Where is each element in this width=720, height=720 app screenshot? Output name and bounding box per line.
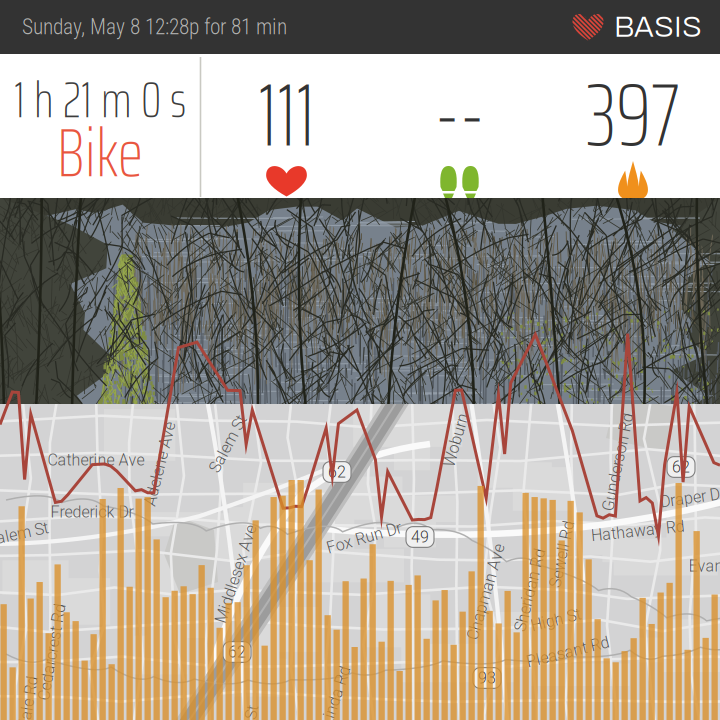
staticText: High St <box>530 611 581 629</box>
staticText: 62 <box>672 458 690 476</box>
staticText: Sheridan Rd <box>487 581 572 599</box>
staticText: -- <box>434 46 484 184</box>
staticText: Chapman Ave <box>436 583 535 601</box>
staticText: Linda Rd <box>305 687 367 705</box>
staticText: 62 <box>328 463 346 481</box>
staticText: Cedarcrest Rd <box>3 643 101 661</box>
staticText: Oakdale Rd <box>0 707 66 720</box>
staticText: Evan <box>688 557 720 575</box>
staticText: Sunday, May 8 12:28p for 81 min <box>22 14 287 39</box>
staticText: 93 <box>478 669 496 687</box>
staticText: BASIS <box>614 11 702 43</box>
staticText: Gunderson Rd <box>568 453 668 471</box>
staticText: Fox Run Dr <box>325 529 402 547</box>
staticText: Sewell Rd <box>528 545 596 563</box>
staticText: 1 h 21 m 0 s <box>14 61 186 139</box>
staticText: Salem St <box>0 525 49 543</box>
staticText: Catherine Ave <box>47 451 144 469</box>
staticText: Adelene Ave <box>117 455 203 473</box>
staticText: 62 <box>228 643 246 661</box>
staticText: Salem St <box>197 435 259 453</box>
staticText: Bike <box>57 100 143 205</box>
staticText: 49 <box>411 528 429 546</box>
staticText: Hathaway Rd <box>591 522 685 540</box>
staticText: Pleasant Rd <box>525 643 610 661</box>
staticText: 397 <box>586 46 680 184</box>
staticText: 111 <box>258 46 315 184</box>
staticText: Woburn <box>428 431 483 449</box>
button[interactable]: BASIS <box>572 5 720 49</box>
staticText: Middlesex Ave <box>185 565 287 583</box>
staticText: Frederick Dr <box>50 503 133 521</box>
staticText: Draper D <box>660 489 720 507</box>
